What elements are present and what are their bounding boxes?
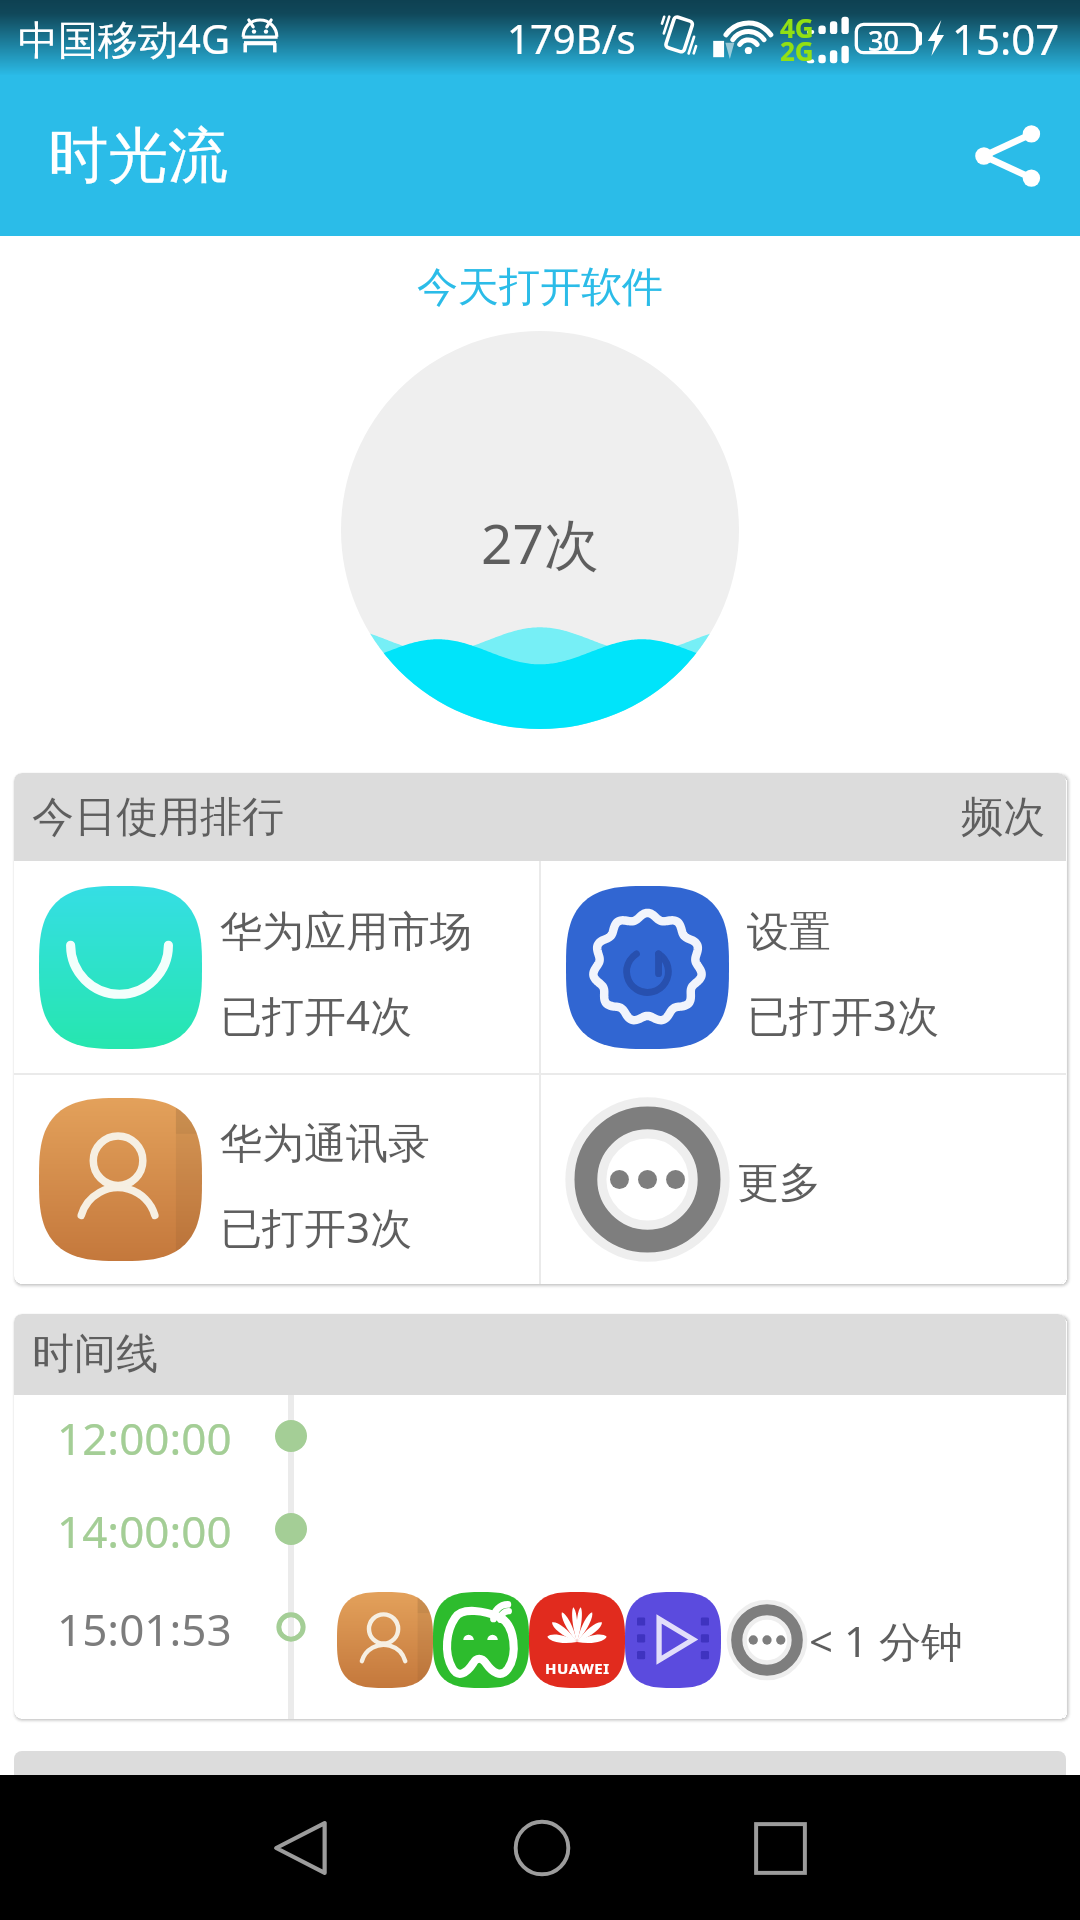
staticText: 时间线 bbox=[32, 1328, 158, 1381]
staticText: 4G bbox=[780, 10, 814, 45]
staticText: 12:00:00 bbox=[57, 1408, 232, 1464]
staticText: 已打开4次 bbox=[220, 986, 413, 1043]
staticText: 已打开3次 bbox=[747, 986, 940, 1043]
staticText: 更多 bbox=[737, 1157, 821, 1210]
staticText: 14:00:00 bbox=[57, 1501, 232, 1557]
staticText: 15:07 bbox=[952, 10, 1060, 67]
button[interactable]: 设置 bbox=[541, 861, 1066, 1073]
staticText: 已打开3次 bbox=[220, 1198, 413, 1255]
staticText: 时光流 bbox=[48, 118, 228, 194]
staticText: 设置 bbox=[747, 906, 831, 959]
staticText: 华为应用市场 bbox=[220, 906, 472, 959]
button[interactable]: Recents bbox=[725, 1793, 835, 1903]
staticText: 今天打开软件 bbox=[417, 262, 663, 314]
button[interactable]: 华为应用市场 bbox=[14, 861, 539, 1073]
staticText: 今日使用排行 bbox=[32, 791, 284, 844]
staticText: 2G bbox=[780, 33, 814, 68]
button[interactable]: 华为通讯录 bbox=[14, 1075, 539, 1284]
staticText: 15:01:53 bbox=[57, 1599, 232, 1655]
button[interactable]: Home bbox=[487, 1793, 597, 1903]
staticText: 27次 bbox=[481, 505, 599, 580]
staticText: 179B/s bbox=[507, 11, 636, 65]
staticText: HUAWEI bbox=[545, 1658, 610, 1678]
staticText: 中国移动4G bbox=[18, 11, 230, 66]
button[interactable]: Share bbox=[970, 118, 1046, 194]
staticText: < 1 分钟 bbox=[809, 1612, 963, 1669]
button[interactable]: 更多 bbox=[541, 1075, 1066, 1284]
button[interactable]: Back bbox=[245, 1793, 355, 1903]
staticText: 30 bbox=[868, 22, 899, 55]
staticText: 华为通讯录 bbox=[220, 1118, 430, 1171]
staticText: 频次 bbox=[961, 791, 1045, 844]
